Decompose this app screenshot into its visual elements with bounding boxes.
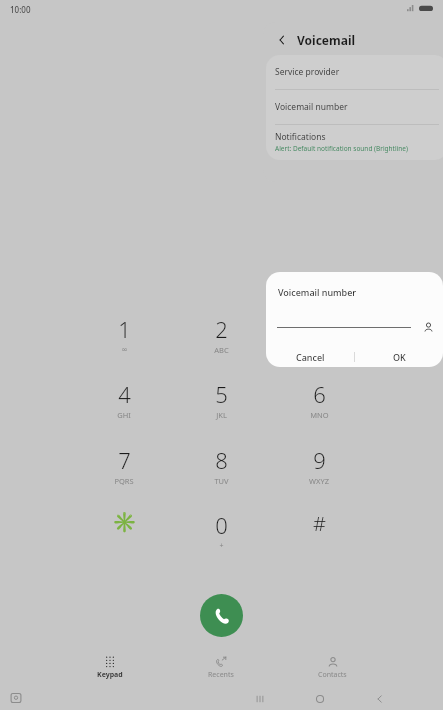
- button[interactable]: 3: [279, 314, 359, 366]
- staticText: 8: [215, 445, 228, 475]
- staticText: Keypad: [97, 670, 123, 680]
- button[interactable]: Pick contact: [419, 318, 437, 336]
- staticText: 2: [215, 314, 228, 344]
- button[interactable]: Recent apps: [252, 691, 268, 707]
- staticText: Alert: Default notification sound (Brigh…: [275, 144, 408, 153]
- staticText: 4: [118, 379, 131, 409]
- button[interactable]: 2: [181, 314, 261, 366]
- staticText: TUV: [214, 476, 229, 486]
- staticText: ✳: [112, 510, 137, 533]
- staticText: Service provider: [275, 66, 340, 78]
- staticText: ∞: [121, 345, 128, 354]
- staticText: ABC: [214, 345, 229, 355]
- staticText: GHI: [117, 410, 131, 420]
- button[interactable]: 1: [84, 314, 164, 366]
- staticText: 9: [313, 445, 326, 475]
- button[interactable]: Service provider: [266, 55, 443, 89]
- staticText: Voicemail number: [278, 286, 357, 298]
- staticText: Contacts: [318, 670, 347, 680]
- button[interactable]: Voicemail number: [266, 90, 443, 124]
- button[interactable]: Contacts: [292, 656, 372, 686]
- button[interactable]: ✳: [84, 510, 164, 562]
- staticText: Voicemail number: [275, 101, 348, 113]
- staticText: 0: [215, 510, 228, 540]
- button[interactable]: 8: [181, 445, 261, 497]
- button[interactable]: Home: [312, 691, 328, 707]
- button[interactable]: #: [279, 510, 359, 562]
- staticText: 5: [215, 379, 228, 409]
- button[interactable]: Notifications: [266, 125, 443, 159]
- staticText: 1: [118, 314, 131, 344]
- button[interactable]: 7: [84, 445, 164, 497]
- staticText: Notifications: [275, 131, 326, 143]
- staticText: Recents: [208, 670, 234, 680]
- staticText: JKL: [216, 410, 227, 420]
- button[interactable]: Keyboard: [9, 691, 23, 705]
- button[interactable]: Call: [200, 594, 243, 637]
- staticText: +: [219, 541, 224, 551]
- button[interactable]: 0: [181, 510, 261, 562]
- staticText: 10:00: [10, 4, 31, 15]
- button[interactable]: 4: [84, 379, 164, 431]
- staticText: MNO: [310, 410, 329, 420]
- button[interactable]: Keypad: [70, 656, 150, 686]
- button[interactable]: Recents: [181, 656, 261, 686]
- button[interactable]: Cancel: [266, 346, 354, 367]
- button[interactable]: 5: [181, 379, 261, 431]
- staticText: 6: [313, 379, 326, 409]
- staticText: Cancel: [296, 351, 325, 363]
- staticText: Voicemail: [297, 32, 356, 48]
- button[interactable]: Back: [372, 691, 388, 707]
- staticText: DEF: [312, 345, 326, 355]
- button[interactable]: Back: [273, 31, 291, 49]
- button[interactable]: 6: [279, 379, 359, 431]
- staticText: OK: [393, 351, 406, 363]
- staticText: 3: [313, 314, 326, 344]
- staticText: WXYZ: [309, 476, 329, 486]
- button[interactable]: 9: [279, 445, 359, 497]
- staticText: 7: [118, 445, 131, 475]
- staticText: #: [313, 510, 326, 537]
- staticText: PQRS: [114, 476, 134, 486]
- button[interactable]: OK: [355, 346, 443, 367]
